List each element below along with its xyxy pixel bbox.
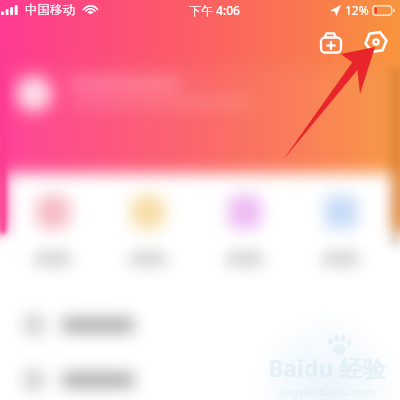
staticText: Jingyan.baidu.com xyxy=(279,384,375,399)
button[interactable]: Add photo xyxy=(313,26,349,62)
staticText: Baidu 经验 xyxy=(268,352,386,383)
button[interactable]: Settings xyxy=(358,24,394,60)
staticText: 下午 4:06 xyxy=(189,2,240,18)
button[interactable] xyxy=(317,195,365,264)
button[interactable] xyxy=(6,308,393,342)
staticText: 12% xyxy=(345,2,369,18)
button[interactable] xyxy=(29,195,77,264)
button[interactable] xyxy=(124,195,172,264)
staticText: 中国移动 xyxy=(25,2,75,18)
button[interactable] xyxy=(221,195,269,264)
button[interactable] xyxy=(6,363,393,397)
